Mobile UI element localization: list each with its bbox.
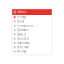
button[interactable]: Important	[12, 41, 52, 45]
staticText: Starred	[17, 33, 26, 36]
button[interactable]: All mail	[12, 49, 52, 54]
staticText: Promotions	[17, 24, 33, 27]
staticText: Important	[17, 41, 30, 45]
staticText: Primary	[17, 15, 26, 19]
button[interactable]: Promotions	[12, 24, 52, 28]
staticText: Snoozed	[17, 37, 29, 40]
button[interactable]: Primary	[12, 15, 52, 19]
button[interactable]: Social	[12, 19, 52, 24]
staticText: Inbox	[17, 10, 25, 14]
button[interactable]: Updates	[12, 28, 52, 32]
button[interactable]: Sent mail	[12, 45, 52, 49]
staticText: Sent mail	[17, 45, 29, 49]
staticText: Social	[17, 20, 24, 23]
staticText: Updates	[17, 28, 28, 32]
button[interactable]: Snoozed	[12, 36, 52, 41]
button[interactable]: Menu	[14, 11, 16, 13]
staticText: All mail	[17, 50, 27, 53]
button[interactable]: Starred	[12, 32, 52, 36]
